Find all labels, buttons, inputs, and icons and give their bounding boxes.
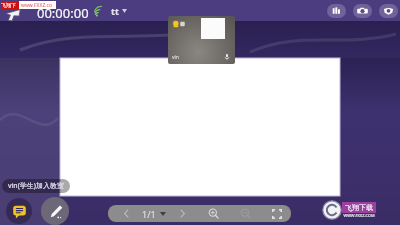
other: Microphone xyxy=(223,53,231,61)
other: Network signal xyxy=(95,6,106,17)
staticText: tt xyxy=(111,5,119,17)
button[interactable]: 1/1 xyxy=(140,208,168,220)
staticText: 飞翔下载 xyxy=(345,203,373,212)
staticText: 1/1 xyxy=(142,208,156,220)
button[interactable]: Annotate xyxy=(41,197,69,225)
button[interactable]: Protection xyxy=(379,4,398,18)
button[interactable]: Chat xyxy=(6,198,32,224)
staticText: WWW.FXXZ.COM xyxy=(343,213,375,218)
staticText: vin xyxy=(172,54,179,61)
staticText: 00:00:00 xyxy=(37,4,89,22)
button[interactable]: Zoom out xyxy=(236,205,254,222)
staticText: vin(学生)加入教室 xyxy=(8,181,64,191)
staticText: www.FXXZ.com xyxy=(21,2,56,9)
button[interactable]: Next page xyxy=(174,205,190,222)
button[interactable]: vin(学生)加入教室 xyxy=(2,179,70,193)
button[interactable]: Fullscreen xyxy=(268,205,286,222)
staticText: 飞翔下载 xyxy=(1,2,19,8)
button[interactable]: Slides xyxy=(327,4,346,18)
button[interactable]: Zoom in xyxy=(204,205,222,222)
button[interactable]: Camera xyxy=(353,4,372,18)
button[interactable]: Previous page xyxy=(118,205,134,222)
